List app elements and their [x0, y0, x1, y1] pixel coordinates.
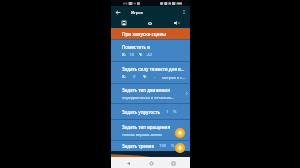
button[interactable]: Задать силу тяжести для все…	[111, 61, 190, 83]
staticText: -	[154, 74, 156, 80]
staticText: X:	[122, 74, 126, 80]
staticText: Задать упругость	[122, 109, 161, 115]
button[interactable]: Back	[114, 9, 121, 16]
button[interactable]: Задать тип движения	[111, 83, 190, 103]
button[interactable]: Sound	[171, 18, 181, 28]
staticText: При запуске сцены	[122, 31, 167, 37]
staticText: Задать тип движения	[122, 87, 170, 93]
staticText: 100	[159, 143, 167, 149]
staticText: передвигаться и отталкив…	[122, 95, 175, 100]
staticText: 0	[133, 74, 136, 80]
staticText: %	[171, 143, 175, 149]
staticText: Y:	[139, 52, 143, 58]
button[interactable]: Задать упругость	[111, 103, 190, 119]
button[interactable]: Add	[175, 143, 185, 153]
staticText: Задать трение	[122, 143, 154, 149]
staticText: метров в секу	[162, 75, 185, 80]
staticText: только вправо-влево	[122, 132, 162, 137]
button[interactable]: Add	[175, 128, 185, 138]
staticText: Задать тип вращения	[122, 124, 171, 130]
staticText: -42	[146, 52, 153, 58]
button[interactable]: Задать трение	[111, 140, 190, 151]
button[interactable]: Поместить в	[111, 39, 190, 61]
staticText: Игрок	[131, 10, 143, 15]
staticText: Задать силу тяжести для все…	[122, 66, 185, 72]
staticText: Поместить в	[122, 44, 150, 50]
button[interactable]: Preview	[145, 18, 155, 28]
button[interactable]: More options	[178, 6, 190, 18]
staticText: X:	[122, 52, 126, 58]
button[interactable]: Save	[119, 18, 129, 28]
button[interactable]: Back	[123, 158, 133, 168]
button[interactable]: Home	[146, 158, 156, 168]
staticText: %	[173, 109, 177, 115]
staticText: 18	[129, 52, 134, 58]
staticText: 1	[166, 109, 169, 115]
button[interactable]: Задать тип вращения	[111, 119, 190, 140]
staticText: Y:	[143, 74, 147, 80]
button[interactable]: Recent apps	[168, 158, 178, 168]
button[interactable]: При запуске сцены	[111, 28, 190, 39]
